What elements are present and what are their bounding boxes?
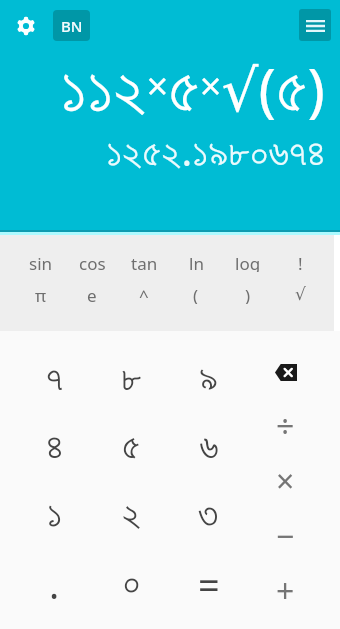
staticText: ০ (123, 565, 141, 603)
button[interactable]: . (16, 550, 93, 618)
button[interactable]: ১ (16, 482, 93, 550)
button[interactable]: + (247, 563, 324, 618)
staticText: + (276, 569, 295, 613)
staticText: ! (298, 252, 303, 272)
staticText: ৬ (199, 429, 219, 467)
button[interactable]: ৯ (170, 345, 247, 414)
staticText: cos (79, 252, 106, 272)
staticText: . (49, 558, 60, 610)
staticText: ৫ (122, 429, 141, 467)
button[interactable]: ৬ (170, 414, 247, 482)
button[interactable]: Backspace (247, 345, 324, 399)
button[interactable]: − (247, 508, 324, 563)
button[interactable]: ৮ (93, 345, 170, 414)
button[interactable]: ৩ (170, 482, 247, 550)
button[interactable]: Menu (299, 9, 331, 41)
staticText: ৩ (198, 497, 219, 535)
button[interactable]: Settings (9, 8, 43, 42)
button[interactable]: ! (274, 252, 326, 272)
staticText: = (198, 558, 220, 610)
button[interactable]: ০ (93, 550, 170, 618)
button[interactable]: ২ (93, 482, 170, 550)
staticText: √ (295, 284, 306, 304)
button[interactable]: cos (66, 252, 118, 272)
staticText: π (35, 284, 47, 304)
staticText: ( (193, 284, 199, 304)
button[interactable]: log (222, 252, 274, 272)
staticText: ৯ (199, 361, 219, 399)
button[interactable]: ÷ (247, 399, 324, 453)
button[interactable]: sin (15, 252, 66, 272)
staticText: sin (29, 252, 53, 272)
button[interactable]: ^ (118, 284, 170, 304)
staticText: ÷ (276, 404, 295, 448)
button[interactable]: π (15, 284, 66, 304)
button[interactable]: ৭ (16, 345, 93, 414)
button[interactable]: ) (222, 284, 274, 304)
staticText: ১১২×৫×√(৫) (60, 49, 325, 128)
button[interactable]: ln (170, 252, 222, 272)
staticText: log (235, 252, 261, 272)
staticText: − (276, 514, 295, 558)
button[interactable]: ৪ (16, 414, 93, 482)
button[interactable]: √ (274, 284, 326, 304)
staticText: ২ (122, 497, 142, 535)
staticText: ^ (139, 284, 149, 304)
button[interactable]: × (247, 453, 324, 508)
staticText: BN (61, 16, 83, 36)
staticText: ১ (47, 497, 63, 535)
staticText: ln (189, 252, 204, 272)
button[interactable]: BN (53, 10, 90, 41)
staticText: ৪ (46, 429, 64, 467)
button[interactable]: ৫ (93, 414, 170, 482)
button[interactable]: ( (170, 284, 222, 304)
button[interactable]: tan (118, 252, 170, 272)
staticText: ১২৫২.১৯৮০৬৭৪ (106, 123, 325, 177)
staticText: ৮ (121, 361, 142, 399)
button[interactable]: = (170, 550, 247, 618)
staticText: ৭ (46, 361, 64, 399)
button[interactable]: e (66, 284, 118, 304)
staticText: × (276, 459, 295, 503)
staticText: ) (245, 284, 251, 304)
staticText: e (87, 284, 97, 304)
staticText: tan (131, 252, 158, 272)
